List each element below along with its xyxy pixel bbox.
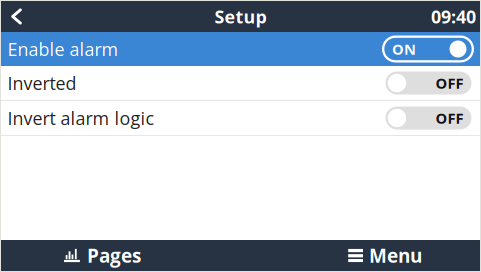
button[interactable]: Inverted — [1, 66, 480, 100]
button[interactable]: Back — [1, 1, 32, 32]
staticText: Invert alarm logic — [7, 106, 154, 130]
staticText: ON — [392, 39, 416, 59]
button[interactable]: Enable alarm — [1, 32, 480, 66]
staticText: Enable alarm — [7, 37, 118, 61]
button[interactable]: Menu — [348, 240, 422, 271]
staticText: OFF — [435, 108, 463, 128]
staticText: Setup — [214, 4, 266, 29]
staticText: OFF — [435, 73, 463, 93]
staticText: 09:40 — [431, 4, 476, 29]
button[interactable]: Invert alarm logic — [1, 101, 480, 135]
staticText: Inverted — [7, 71, 76, 95]
staticText: Menu — [369, 243, 422, 268]
button[interactable]: Pages — [64, 240, 141, 271]
staticText: Pages — [87, 243, 141, 268]
